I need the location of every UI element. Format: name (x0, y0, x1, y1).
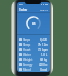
staticText: 8,420 (40, 38, 48, 42)
staticText: Good (40, 68, 48, 72)
staticText: Today (19, 8, 28, 11)
staticText: Steps (23, 38, 31, 42)
staticText: Sleep (23, 43, 31, 47)
button[interactable]: Sleep (17, 42, 50, 47)
button[interactable]: Mood (17, 67, 50, 72)
button[interactable]: Steps (17, 37, 50, 42)
staticText: Water (23, 53, 31, 57)
staticText: 7h 12m (38, 43, 48, 47)
button[interactable]: Energy (17, 62, 50, 67)
staticText: 68 kg (40, 58, 48, 62)
staticText: 9:41 (19, 3, 24, 6)
staticText: Weight (23, 58, 33, 62)
staticText: Mar 12 (40, 8, 48, 11)
staticText: 420 kc (39, 63, 48, 67)
button[interactable]: Heart (17, 47, 50, 52)
staticText: Heart (23, 48, 31, 52)
button[interactable]: Water (17, 52, 50, 57)
staticText: Energy (23, 63, 33, 67)
staticText: 1.8 L (41, 53, 48, 57)
button[interactable]: Weight (17, 57, 50, 62)
staticText: 72 bpm (38, 48, 48, 52)
staticText: Mood (23, 68, 31, 72)
staticText: 85 (32, 22, 36, 26)
